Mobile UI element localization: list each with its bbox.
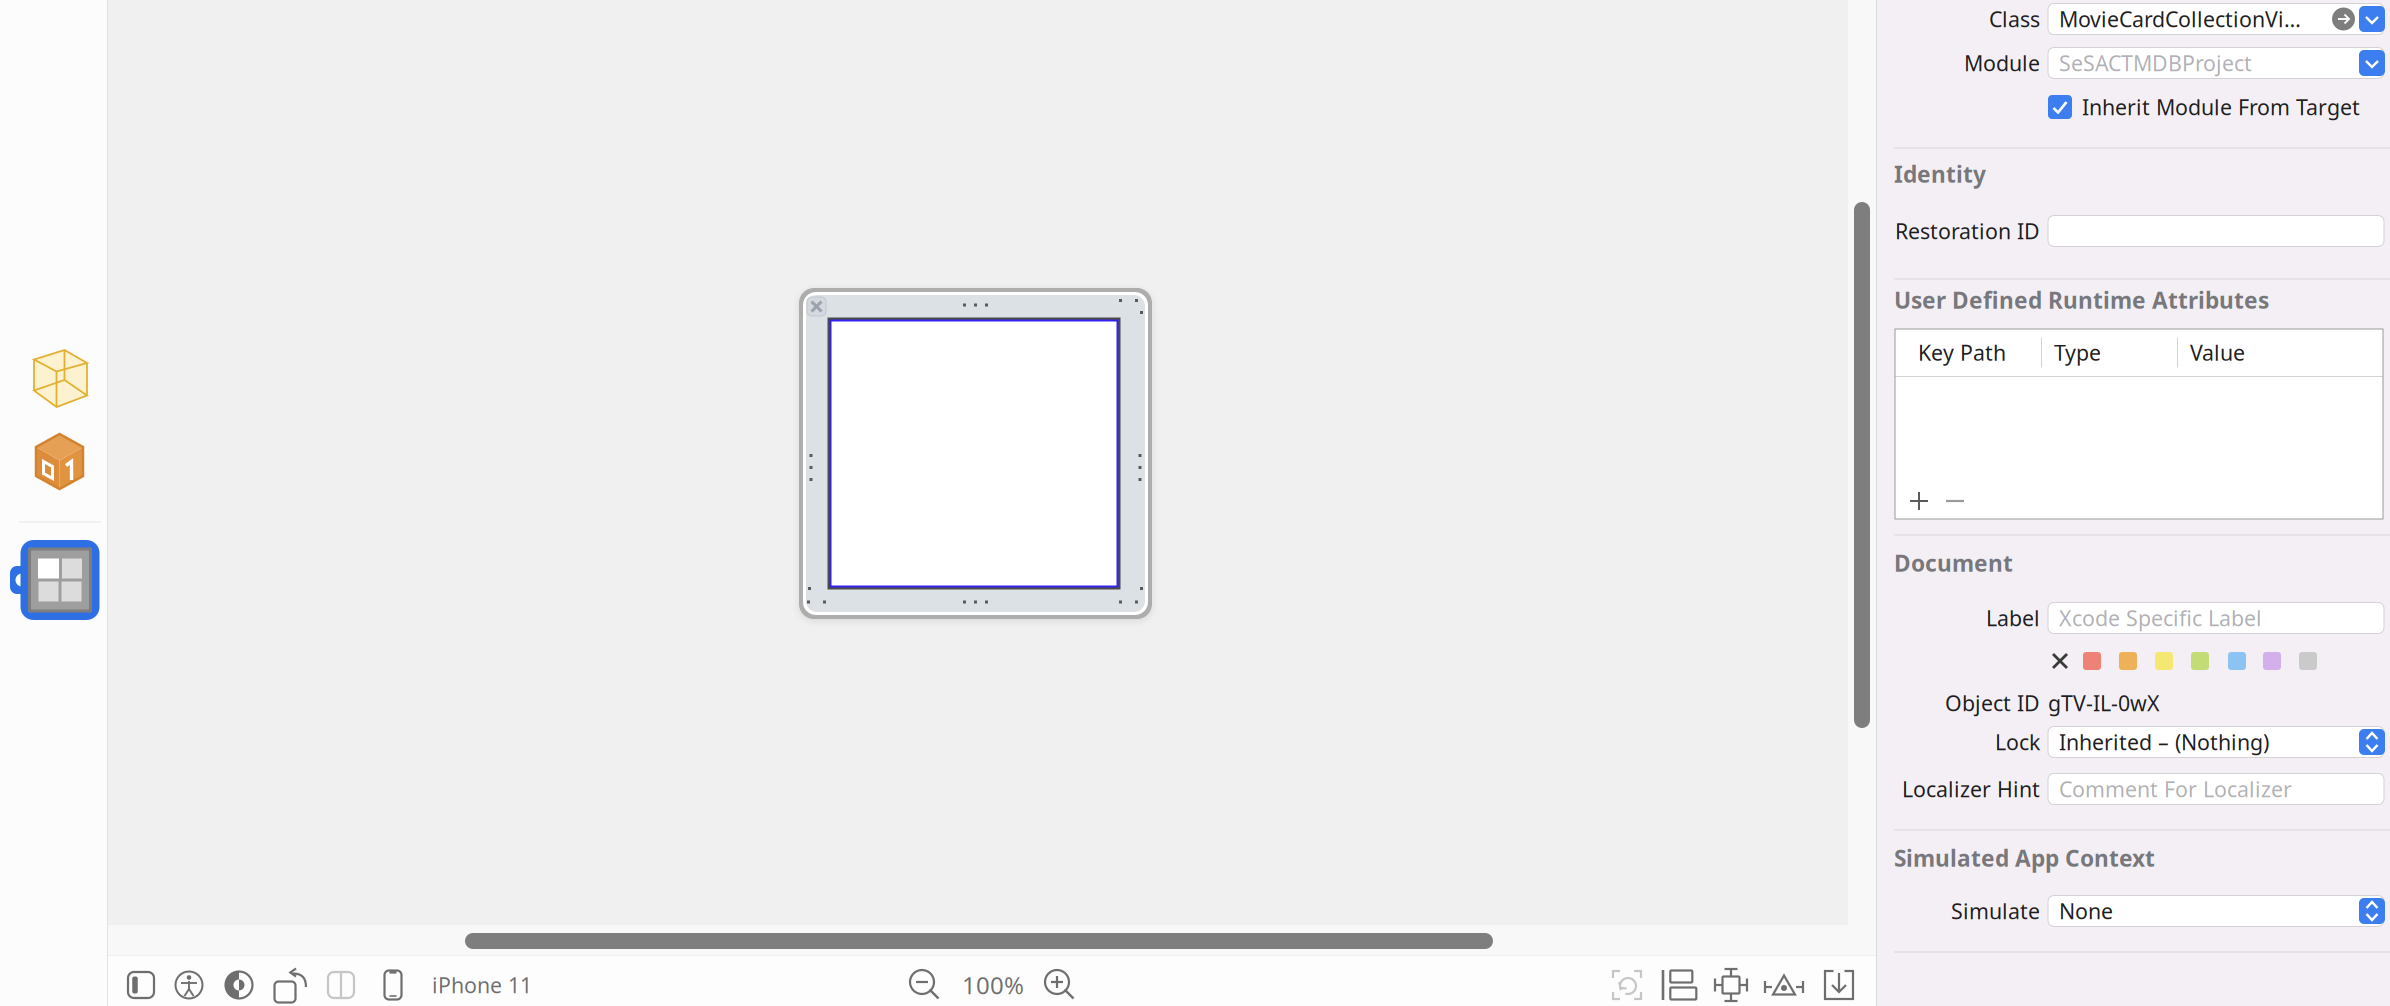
staticText: Module <box>1964 49 2040 77</box>
button[interactable]: Accessibility Inspector <box>166 960 212 1006</box>
staticText: Simulated App Context <box>1894 843 2155 873</box>
staticText: Simulate <box>1951 897 2040 925</box>
button[interactable]: Inherited – (Nothing) <box>2048 726 2384 757</box>
button[interactable]: Add <box>1905 487 1933 515</box>
staticText: Key Path <box>1918 338 2006 367</box>
staticText: Value <box>2190 338 2245 367</box>
button[interactable]: Zoom Out <box>902 960 948 1006</box>
button[interactable]: Xcode Specific Label <box>2048 602 2384 633</box>
button[interactable]: Colour <box>2186 647 2214 675</box>
button[interactable]: Colour <box>2258 647 2286 675</box>
staticText: Restoration ID <box>1895 217 2040 245</box>
button[interactable]: Update Frames <box>1604 960 1650 1006</box>
button[interactable]: None <box>2048 895 2384 926</box>
button[interactable]: Colour <box>2078 647 2106 675</box>
staticText: Document <box>1894 548 2013 578</box>
staticText: Comment For Localizer <box>2059 775 2292 803</box>
button[interactable]: Orientation <box>267 960 313 1006</box>
button[interactable]: Collection View Cell <box>10 535 110 625</box>
staticText: Inherit Module From Target <box>2082 93 2360 121</box>
staticText: MovieCardCollectionVi… <box>2059 5 2301 33</box>
staticText: User Defined Runtime Attributes <box>1894 285 2269 315</box>
button[interactable]: 100% <box>948 965 1038 1005</box>
staticText: Inherited – (Nothing) <box>2059 728 2269 756</box>
button[interactable]: Resolve Auto Layout Issues <box>1816 960 1862 1006</box>
button[interactable]: Split View <box>318 960 364 1006</box>
staticText: SeSACTMDBProject <box>2059 49 2252 77</box>
button[interactable]: Add New Constraints <box>1761 960 1807 1006</box>
button[interactable]: Comment For Localizer <box>2048 773 2384 804</box>
button[interactable]: Colour <box>2150 647 2178 675</box>
button[interactable]: Inherit Module From Target <box>2048 92 2388 122</box>
staticText: Type <box>2054 338 2101 367</box>
button[interactable]: Show Document Outline <box>118 960 164 1006</box>
staticText: Lock <box>1995 728 2040 756</box>
staticText: Identity <box>1894 159 1986 189</box>
button[interactable]: SeSACTMDBProject <box>2048 47 2384 78</box>
staticText: 100% <box>962 969 1024 1001</box>
button[interactable]: Embed In <box>1656 960 1702 1006</box>
button[interactable]: Zoom In <box>1037 960 1083 1006</box>
staticText: Label <box>1986 604 2040 632</box>
button[interactable]: Remove <box>1941 487 1969 515</box>
button[interactable]: Colour <box>2114 647 2142 675</box>
button[interactable]: iPhone 11 <box>432 965 572 1005</box>
button[interactable]: No colour <box>2047 648 2073 674</box>
button[interactable]: Colour <box>2294 647 2322 675</box>
button[interactable]: Appearance <box>216 960 262 1006</box>
staticText: gTV-IL-0wX <box>2048 689 2160 717</box>
staticText: Object ID <box>1945 689 2040 717</box>
button[interactable]: Device <box>370 960 416 1006</box>
button[interactable]: Delete <box>807 297 826 316</box>
button[interactable]: Colour <box>2223 647 2251 675</box>
staticText: Xcode Specific Label <box>2059 604 2262 632</box>
button[interactable]: MovieCardCollectionVi… <box>2048 3 2384 34</box>
staticText: iPhone 11 <box>432 971 532 999</box>
staticText: Localizer Hint <box>1902 775 2040 803</box>
button[interactable]: Align <box>1708 960 1754 1006</box>
staticText: None <box>2059 897 2113 925</box>
staticText: Class <box>1989 5 2040 33</box>
